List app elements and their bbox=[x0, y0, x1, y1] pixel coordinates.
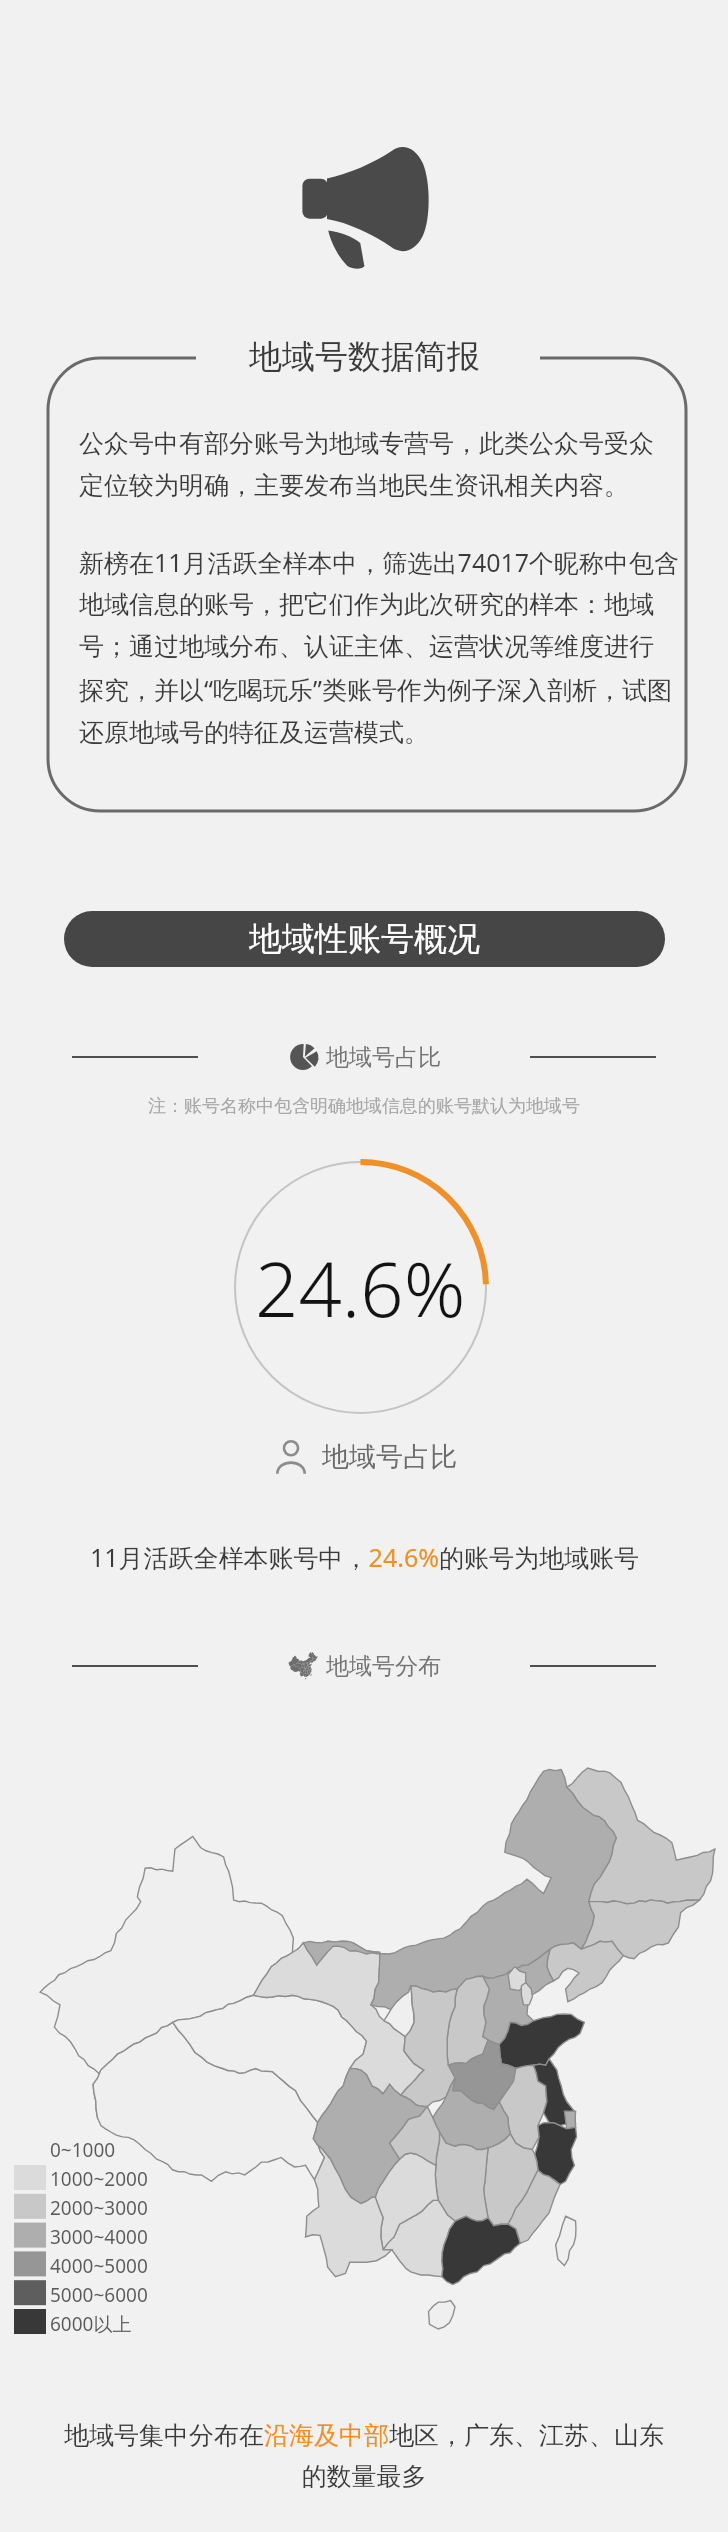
staticText: 地域号占比 bbox=[322, 1440, 457, 1474]
staticText: 新榜在11月活跃全样本中，筛选出74017个昵称中包含 地域信息的账号，把它们作… bbox=[79, 545, 680, 749]
button[interactable]: 4000~5000 bbox=[50, 2251, 170, 2280]
staticText: 4000~5000 bbox=[50, 2253, 148, 2279]
staticText: 5000~6000 bbox=[50, 2282, 148, 2308]
other: Regional account share bbox=[272, 1438, 310, 1476]
staticText: 公众号中有部分账号为地域专营号，此类公众号受众 定位较为明确，主要发布当地民生资… bbox=[79, 428, 654, 502]
staticText: 地域号数据简报 bbox=[249, 336, 480, 378]
staticText: 3000~4000 bbox=[50, 2224, 148, 2250]
button[interactable]: Regional account share bbox=[266, 1436, 463, 1478]
staticText: 2000~3000 bbox=[50, 2195, 148, 2221]
staticText: 24.6% bbox=[255, 1236, 466, 1340]
other: Pie chart bbox=[288, 1042, 318, 1072]
button[interactable]: 1000~2000 bbox=[50, 2164, 170, 2193]
staticText: 6000以上 bbox=[50, 2311, 132, 2337]
staticText: 0~1000 bbox=[50, 2137, 116, 2163]
button[interactable]: 5000~6000 bbox=[50, 2280, 170, 2309]
other: Announcement bbox=[302, 145, 430, 269]
button[interactable]: 0~1000 bbox=[50, 2135, 170, 2164]
staticText: 注：账号名称中包含明确地域信息的账号默认为地域号 bbox=[148, 1095, 580, 1118]
staticText: 地域号集中分布在沿海及中部地区，广东、江苏、山东 的数量最多 bbox=[64, 2420, 664, 2492]
staticText: 地域号占比 bbox=[326, 1043, 441, 1072]
staticText: 地域性账号概况 bbox=[249, 918, 480, 960]
button[interactable]: 6000以上 bbox=[50, 2309, 170, 2338]
other: Map of China bbox=[288, 1651, 318, 1681]
button[interactable]: Pie chart bbox=[282, 1037, 447, 1077]
button[interactable]: 2000~3000 bbox=[50, 2193, 170, 2222]
button[interactable]: Map of China bbox=[282, 1646, 447, 1686]
button[interactable]: 地域性账号概况 bbox=[64, 911, 665, 967]
staticText: 1000~2000 bbox=[50, 2166, 148, 2192]
staticText: 地域号分布 bbox=[326, 1652, 441, 1681]
staticText: 11月活跃全样本账号中，24.6%的账号为地域账号 bbox=[90, 1540, 639, 1574]
button[interactable]: 3000~4000 bbox=[50, 2222, 170, 2251]
